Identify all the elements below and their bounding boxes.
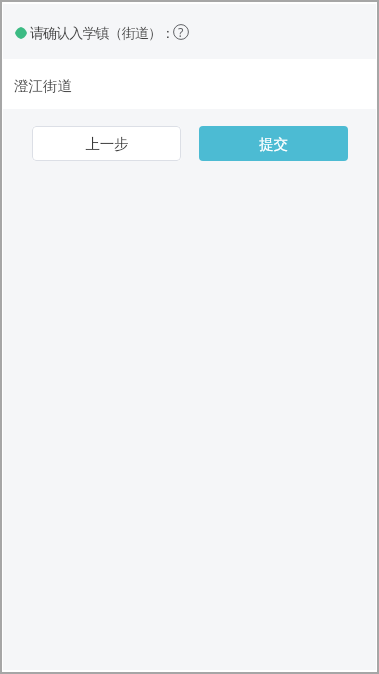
- staticText: 上一步: [85, 135, 129, 153]
- staticText: 提交: [259, 135, 288, 153]
- button[interactable]: 上一步: [32, 126, 181, 161]
- staticText: 澄江街道: [14, 77, 72, 95]
- button[interactable]: 提交: [199, 126, 348, 161]
- staticText: 请确认入学镇（街道）：: [30, 25, 175, 43]
- staticText: ?: [178, 24, 184, 40]
- button[interactable]: 澄江街道: [3, 59, 376, 109]
- button[interactable]: 帮助说明: [173, 24, 189, 40]
